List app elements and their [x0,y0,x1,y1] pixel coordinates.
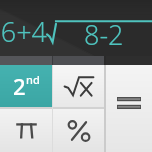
staticText: 6+4 [0,13,47,50]
staticText: nd [26,72,40,87]
button[interactable]: Percent [53,109,104,152]
button[interactable]: 2 [0,65,52,107]
staticText: 2 [13,71,26,101]
button[interactable]: Equals [106,65,152,152]
button[interactable]: Pi [0,109,52,152]
button[interactable]: Square root [53,65,104,107]
staticText: 8-2 [84,16,124,46]
